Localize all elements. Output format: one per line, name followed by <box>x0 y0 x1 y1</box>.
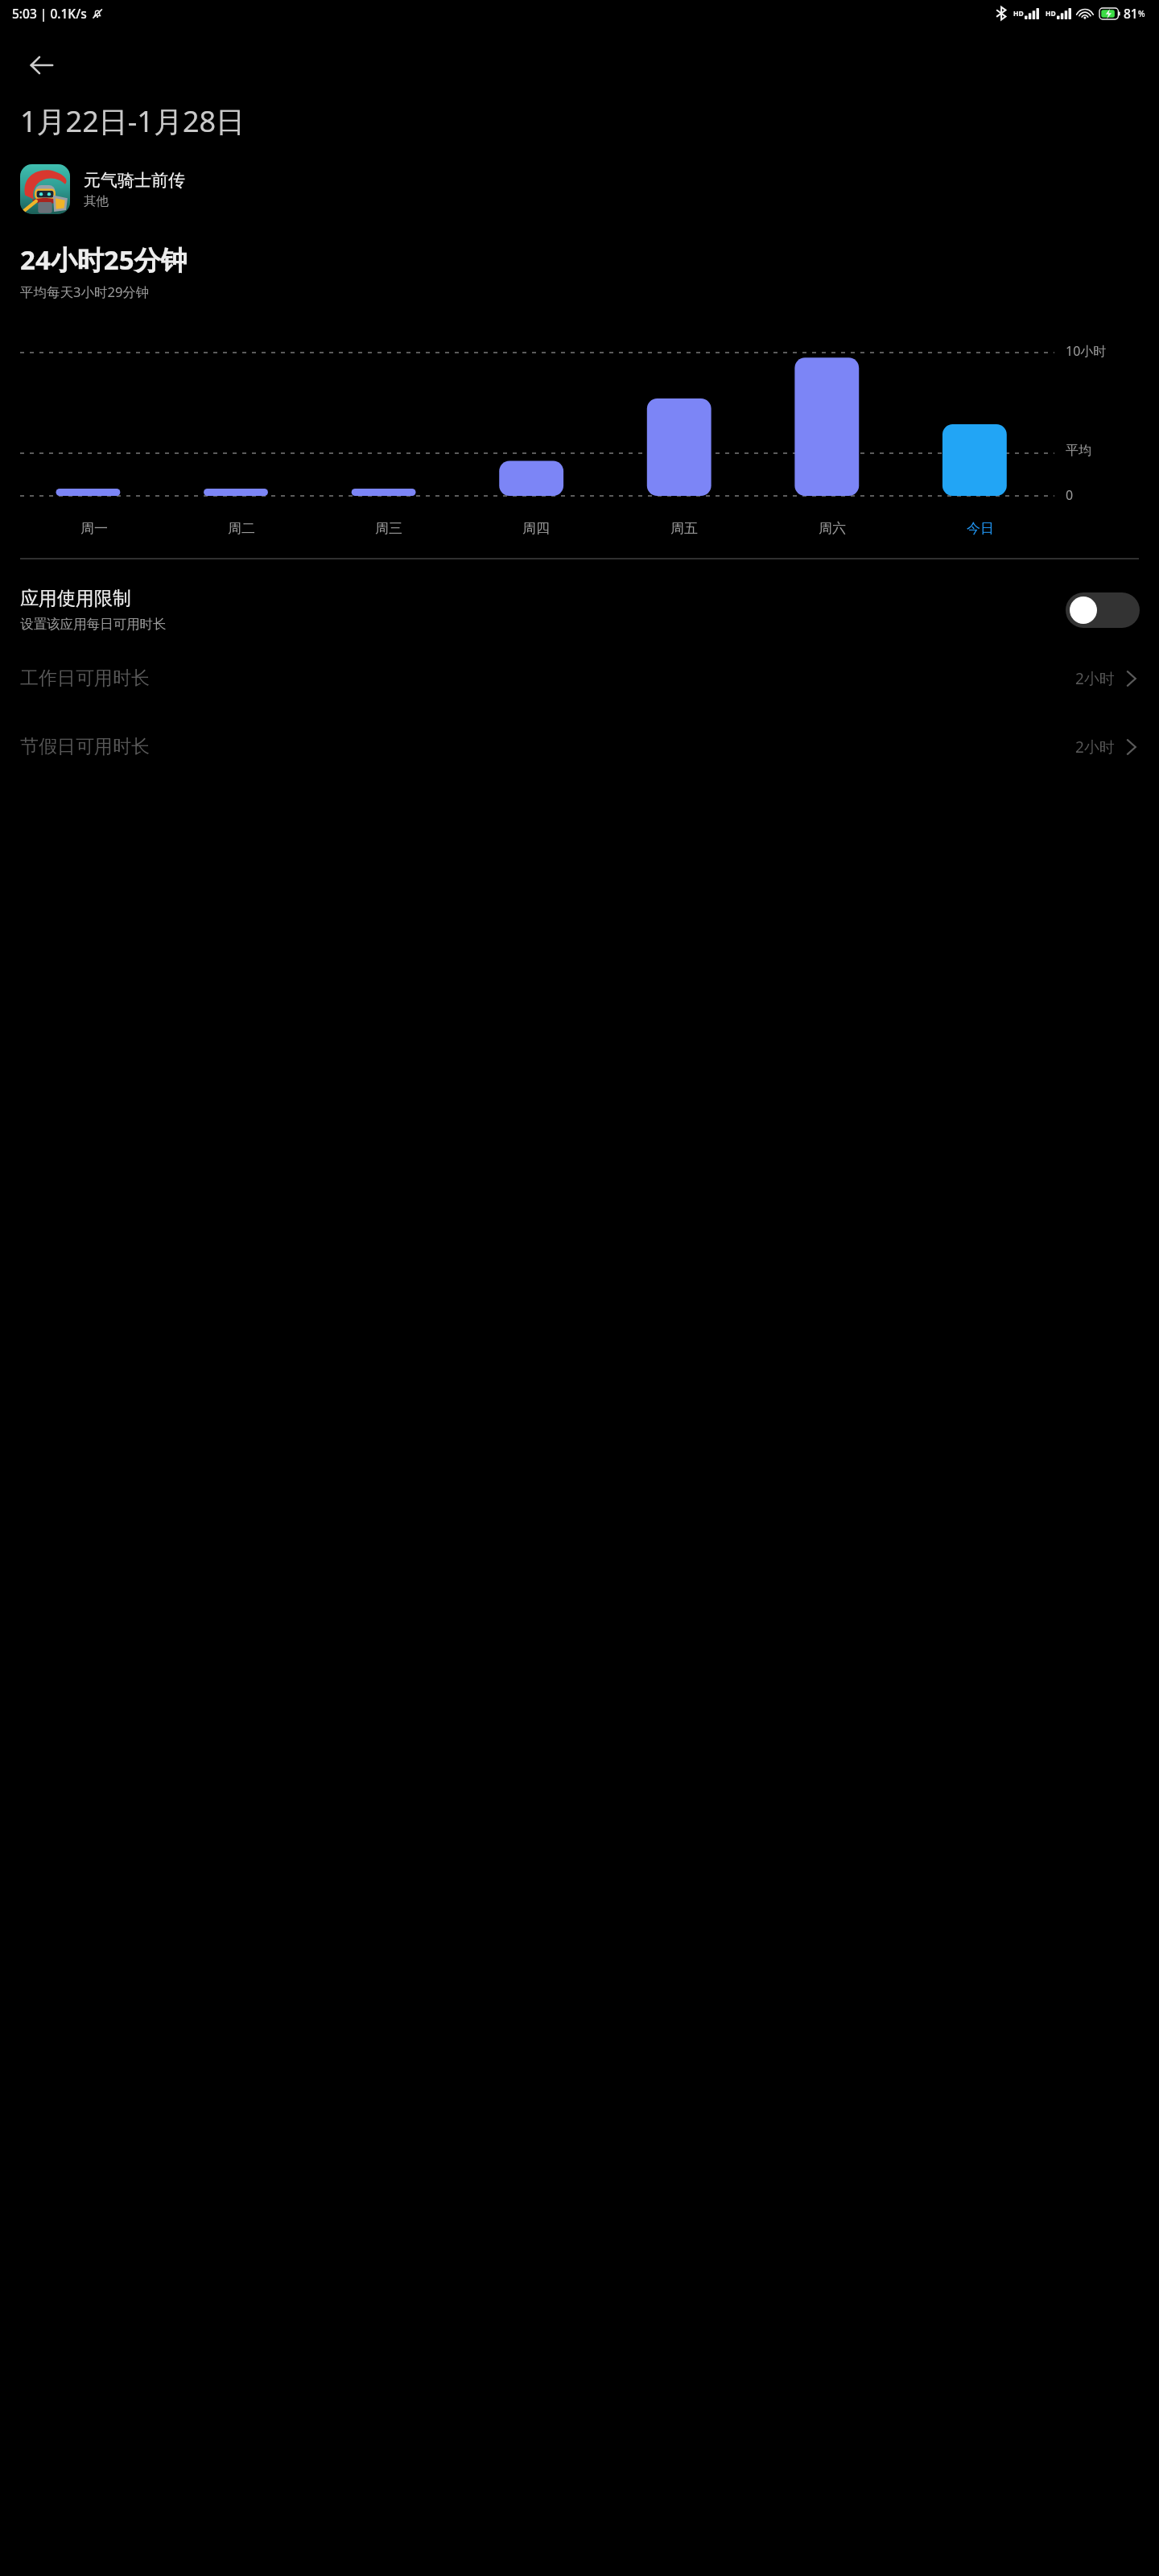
staticText: 周四 <box>522 520 550 537</box>
staticText: 2小时 <box>1075 737 1115 758</box>
staticText: 元气骑士前传 <box>84 170 185 191</box>
button[interactable]: 应用使用限制 <box>0 582 1159 638</box>
staticText: 应用使用限制 <box>20 587 131 610</box>
staticText: 节假日可用时长 <box>20 735 1075 758</box>
staticText: 1月22日-1月28日 <box>20 101 245 141</box>
staticText: 24小时25分钟 <box>20 242 188 278</box>
button[interactable]: App usage limit toggle <box>1066 592 1140 628</box>
staticText: 工作日可用时长 <box>20 667 1075 690</box>
button[interactable]: Back <box>19 43 64 88</box>
staticText: 81 <box>1124 5 1138 22</box>
staticText: % <box>1138 8 1145 19</box>
staticText: 其他 <box>84 193 109 209</box>
staticText: 2小时 <box>1075 668 1115 689</box>
staticText: 5:03 | 0.1K/s <box>12 5 87 22</box>
button[interactable]: 节假日可用时长 <box>0 724 1159 770</box>
staticText: 平均每天3小时29分钟 <box>20 283 150 301</box>
button[interactable]: 工作日可用时长 <box>0 655 1159 701</box>
staticText: HD <box>1013 9 1024 19</box>
staticText: HD <box>1046 9 1056 19</box>
staticText: 今日 <box>967 520 994 537</box>
staticText: 0 <box>1066 486 1074 504</box>
staticText: 周六 <box>819 520 846 537</box>
button[interactable]: 元气骑士前传 <box>0 161 1159 217</box>
staticText: 平均 <box>1066 443 1091 459</box>
staticText: 周三 <box>375 520 402 537</box>
staticText: 周一 <box>80 520 108 537</box>
staticText: 周二 <box>228 520 255 537</box>
staticText: 周五 <box>670 520 698 537</box>
staticText: 设置该应用每日可用时长 <box>20 616 167 633</box>
staticText: 10小时 <box>1066 342 1107 360</box>
